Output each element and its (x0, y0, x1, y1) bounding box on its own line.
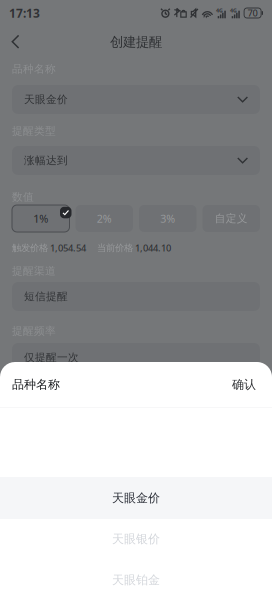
staticText: 4G (230, 7, 237, 14)
staticText: 天眼银价 (112, 532, 160, 546)
staticText: 仅提醒一次 (24, 351, 79, 364)
staticText: 当前价格 (97, 242, 133, 254)
button[interactable]: 天眼铂金 (0, 559, 272, 600)
staticText: 自定义 (215, 212, 248, 225)
button[interactable]: Back (0, 26, 31, 58)
staticText: 1,054.54 (48, 242, 86, 254)
staticText: 天眼金价 (112, 491, 160, 505)
button[interactable]: 天眼银价 (0, 518, 272, 559)
button[interactable]: 涨幅达到 (12, 146, 260, 175)
button[interactable]: 确认 (228, 370, 260, 398)
staticText: 3% (160, 211, 175, 226)
staticText: 品种名称 (12, 377, 60, 392)
staticText: 数值 (12, 190, 34, 203)
button[interactable]: 3% (139, 205, 196, 232)
staticText: 提醒类型 (12, 124, 56, 137)
staticText: 品种名称 (12, 62, 56, 75)
staticText: 创建提醒 (110, 34, 162, 50)
button[interactable]: 天眼金价 (12, 85, 260, 114)
button[interactable]: 1% (12, 205, 69, 232)
staticText: 确认 (232, 377, 256, 392)
staticText: 提醒渠道 (12, 264, 56, 277)
staticText: 1% (33, 211, 48, 226)
button[interactable]: 短信提醒 (12, 282, 260, 311)
button[interactable]: 自定义 (202, 205, 260, 232)
button[interactable]: 天眼金价 (0, 477, 272, 518)
staticText: 天眼铂金 (112, 573, 160, 587)
staticText: 涨幅达到 (24, 154, 68, 167)
staticText: 4G (216, 7, 223, 14)
staticText: 天眼金价 (24, 93, 68, 106)
staticText: 2% (97, 211, 112, 226)
staticText: 17:13 (9, 5, 40, 21)
staticText: 短信提醒 (24, 290, 68, 303)
button[interactable]: 仅提醒一次 (12, 343, 260, 372)
button[interactable]: 2% (75, 205, 133, 232)
staticText: 触发价格 (12, 242, 48, 254)
staticText: 1,044.10 (133, 242, 171, 254)
staticText: 提醒频率 (12, 324, 56, 337)
staticText: 70 (248, 7, 258, 19)
